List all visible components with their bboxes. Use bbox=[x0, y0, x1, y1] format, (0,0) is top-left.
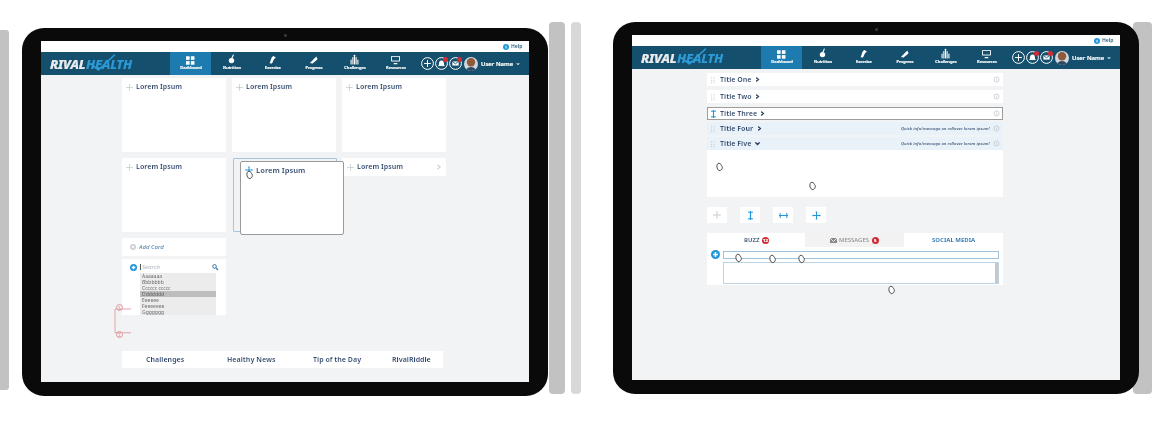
button[interactable]: Search bbox=[130, 263, 218, 271]
staticText: Feeeeeee bbox=[142, 303, 165, 309]
button[interactable]: Title Five bbox=[707, 137, 1003, 150]
staticText: Title One bbox=[720, 75, 752, 85]
button[interactable]: Lorem Ipsum bbox=[342, 158, 446, 176]
button[interactable]: BUZZ bbox=[707, 233, 805, 247]
button[interactable]: Notifications bbox=[435, 57, 448, 70]
button[interactable]: Ddddddd bbox=[140, 291, 216, 297]
staticText: Exercise bbox=[265, 65, 281, 70]
button[interactable]: RIVAL bbox=[50, 54, 154, 74]
button[interactable]: Title Two bbox=[707, 90, 1003, 103]
button[interactable]: SOCIAL MEDIA bbox=[904, 233, 1003, 247]
staticText: 12 bbox=[763, 238, 768, 244]
staticText: User Name bbox=[481, 60, 514, 68]
staticText: Lorem Ipsum bbox=[136, 82, 183, 92]
staticText: Challenges bbox=[344, 65, 366, 70]
staticText: Dashboard bbox=[180, 65, 202, 70]
button[interactable]: Progress bbox=[293, 52, 334, 75]
button[interactable]: Lorem Ipsum bbox=[122, 78, 226, 152]
button[interactable]: Progress bbox=[884, 46, 925, 69]
staticText: Cccccc ccccc bbox=[142, 285, 171, 291]
button[interactable] bbox=[723, 251, 999, 259]
button[interactable]: Healthy News bbox=[208, 351, 294, 368]
button[interactable]: Challenges bbox=[334, 52, 375, 75]
button[interactable]: Challenges bbox=[122, 351, 208, 368]
staticText: Eeeeee bbox=[142, 297, 159, 303]
button[interactable]: Lorem Ipsum bbox=[232, 78, 336, 152]
staticText: Lorem Ipsum bbox=[256, 165, 306, 175]
staticText: Progress bbox=[305, 65, 323, 70]
staticText: Exercise bbox=[856, 59, 872, 64]
button[interactable]: Resources bbox=[375, 52, 416, 75]
button[interactable]: Add bbox=[1012, 51, 1025, 64]
button[interactable]: Help bbox=[1094, 37, 1114, 44]
staticText: Dashboard bbox=[771, 59, 793, 64]
button[interactable]: Messages bbox=[449, 57, 462, 70]
staticText: RIVAL bbox=[641, 49, 677, 67]
button[interactable]: MESSAGES bbox=[805, 233, 904, 247]
button[interactable]: Dashboard bbox=[170, 52, 211, 75]
staticText: 5 bbox=[874, 238, 877, 244]
button[interactable]: Lorem Ipsum bbox=[240, 161, 344, 235]
staticText: HEALTH bbox=[86, 55, 133, 73]
button[interactable]: Drag handle bbox=[806, 207, 826, 223]
staticText: Progress bbox=[896, 59, 914, 64]
button[interactable]: Challenges bbox=[925, 46, 966, 69]
staticText: SOCIAL MEDIA bbox=[932, 236, 976, 244]
button[interactable]: Drag handle bbox=[707, 207, 727, 223]
button[interactable]: Title Three bbox=[707, 107, 1003, 120]
staticText: Lorem Ipsum bbox=[356, 82, 403, 92]
button[interactable]: RIVAL bbox=[641, 48, 745, 68]
button[interactable]: Title Four bbox=[707, 122, 1003, 135]
staticText: Quick info/message on rollover lorem ips… bbox=[901, 126, 990, 132]
button[interactable]: Eeeeee bbox=[140, 297, 216, 303]
staticText: Bbbbbbb bbox=[142, 279, 164, 285]
staticText: Challenges bbox=[935, 59, 957, 64]
button[interactable]: Title One bbox=[707, 73, 1003, 86]
button[interactable]: Exercise bbox=[252, 52, 293, 75]
staticText: RivalRiddle bbox=[392, 355, 431, 365]
button[interactable]: Cccccc ccccc bbox=[140, 285, 216, 291]
button[interactable]: Profile bbox=[1055, 51, 1069, 65]
button[interactable]: Nutrition bbox=[211, 52, 252, 75]
staticText: Nutrition bbox=[814, 59, 832, 64]
staticText: Ddddddd bbox=[142, 291, 165, 297]
button[interactable]: Resources bbox=[966, 46, 1007, 69]
staticText: Resources bbox=[977, 59, 997, 64]
button[interactable]: Help bbox=[503, 43, 523, 50]
button[interactable]: Lorem Ipsum bbox=[342, 78, 446, 152]
staticText: Healthy News bbox=[227, 355, 276, 365]
staticText: Quick info/message on rollover lorem ips… bbox=[901, 141, 990, 147]
staticText: Add Card bbox=[139, 243, 164, 251]
button[interactable]: Exercise bbox=[843, 46, 884, 69]
staticText: Aaaaaaa bbox=[142, 273, 163, 279]
staticText: Title Four bbox=[720, 124, 754, 134]
button[interactable]: Messages bbox=[1040, 51, 1053, 64]
staticText: Lorem Ipsum bbox=[136, 162, 183, 172]
button[interactable]: Add bbox=[421, 57, 434, 70]
staticText: 1 bbox=[118, 305, 121, 311]
button[interactable]: Tip of the Day bbox=[294, 351, 380, 368]
button[interactable]: Feeeeeee bbox=[140, 303, 216, 309]
staticText: Challenges bbox=[146, 355, 185, 365]
button[interactable]: RivalRiddle bbox=[380, 351, 443, 368]
button[interactable]: Bbbbbbb bbox=[140, 279, 216, 285]
staticText: Title Three bbox=[720, 109, 758, 119]
staticText: Help bbox=[1102, 37, 1114, 44]
button[interactable]: Profile bbox=[464, 57, 478, 71]
button[interactable]: Drag handle bbox=[740, 207, 760, 223]
button[interactable]: Aaaaaaa bbox=[140, 273, 216, 279]
button[interactable]: Ggggggg bbox=[140, 309, 216, 315]
staticText: Resources bbox=[386, 65, 406, 70]
button[interactable]: Add Card bbox=[122, 238, 226, 256]
button[interactable]: Dashboard bbox=[761, 46, 802, 69]
button[interactable]: Notifications bbox=[1026, 51, 1039, 64]
staticText: Search bbox=[142, 263, 160, 271]
staticText: BUZZ bbox=[744, 236, 760, 244]
button[interactable]: Drag handle bbox=[773, 207, 793, 223]
staticText: Nutrition bbox=[223, 65, 241, 70]
button[interactable]: Lorem Ipsum bbox=[122, 158, 226, 232]
staticText: Ggggggg bbox=[142, 309, 165, 315]
button[interactable]: Nutrition bbox=[802, 46, 843, 69]
staticText: Tip of the Day bbox=[313, 355, 362, 365]
